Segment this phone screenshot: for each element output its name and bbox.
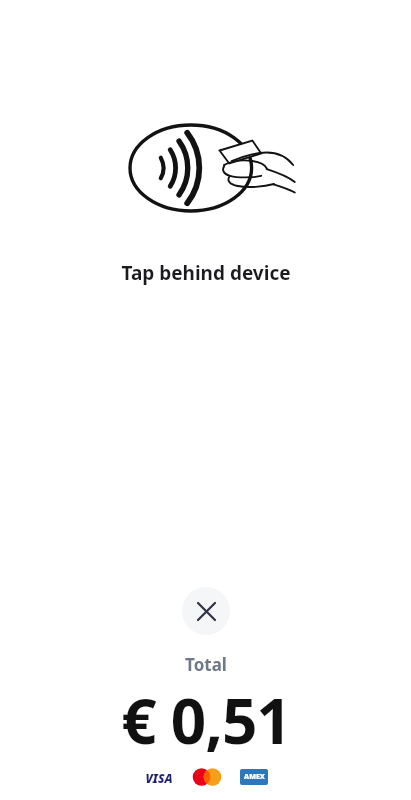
staticText: Total [185, 653, 227, 676]
staticText: € 0,51 [121, 678, 291, 762]
staticText: VISA [145, 770, 173, 784]
staticText: AMEX [244, 772, 265, 782]
staticText: Tap behind device [121, 260, 291, 286]
button[interactable]: Close [182, 587, 230, 635]
